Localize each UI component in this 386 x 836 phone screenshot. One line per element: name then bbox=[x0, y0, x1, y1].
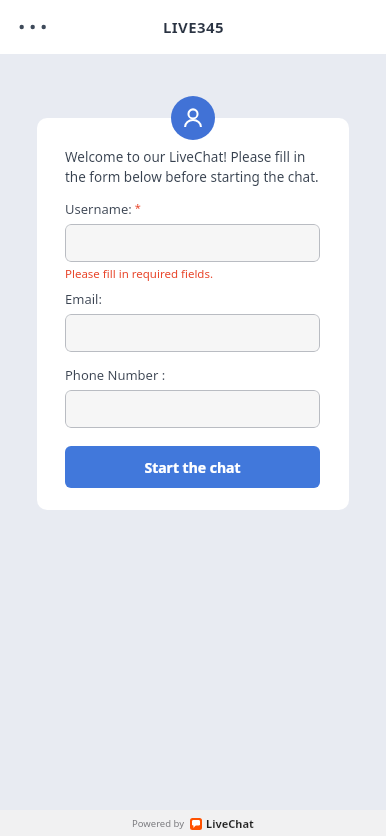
staticText: Please fill in required fields. bbox=[65, 266, 214, 282]
button[interactable] bbox=[65, 224, 320, 262]
staticText: LIVE345 bbox=[163, 17, 224, 37]
staticText: Phone Number : bbox=[65, 366, 166, 384]
button[interactable] bbox=[65, 390, 320, 428]
staticText: Start the chat bbox=[144, 458, 241, 477]
button[interactable] bbox=[65, 314, 320, 352]
staticText: * bbox=[132, 200, 141, 215]
staticText: Welcome to our LiveChat! Please fill in … bbox=[65, 148, 320, 186]
button[interactable]: Start the chat bbox=[65, 446, 320, 488]
staticText: LiveChat bbox=[206, 816, 254, 831]
staticText: Username: bbox=[65, 200, 132, 218]
staticText: Powered by bbox=[132, 817, 185, 830]
button[interactable]: Powered by bbox=[132, 816, 254, 831]
staticText: Email: bbox=[65, 290, 102, 308]
button[interactable]: Menu bbox=[10, 7, 54, 47]
